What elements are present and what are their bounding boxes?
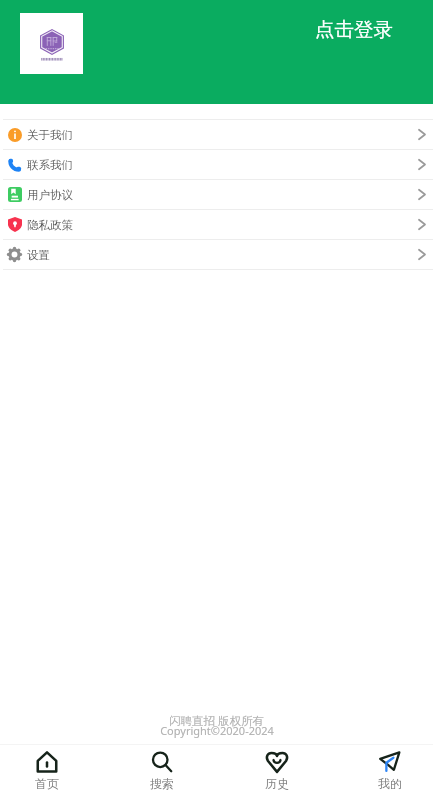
button[interactable]: 首页 xyxy=(0,745,101,794)
button[interactable]: 设置 xyxy=(0,240,433,269)
button[interactable]: Logo xyxy=(20,13,83,74)
staticText: 联系我们 xyxy=(27,158,73,172)
button[interactable]: 搜索 xyxy=(108,745,216,794)
button[interactable]: 我的 xyxy=(336,745,433,794)
button[interactable]: 用户协议 xyxy=(0,180,433,209)
staticText: 隐私政策 xyxy=(27,218,73,232)
button[interactable]: 关于我们 xyxy=(0,120,433,149)
staticText: 历史 xyxy=(265,776,289,791)
button[interactable]: 历史 xyxy=(223,745,331,794)
staticText: 关于我们 xyxy=(27,128,73,142)
staticText: 搜索 xyxy=(150,776,174,791)
button[interactable]: 联系我们 xyxy=(0,150,433,179)
button[interactable]: 点击登录 xyxy=(315,17,393,42)
staticText: 设置 xyxy=(27,248,50,262)
staticText: 用户协议 xyxy=(27,188,73,202)
staticText: 首页 xyxy=(35,776,59,791)
staticText: 闪聘直招 版权所有 xyxy=(169,713,264,729)
button[interactable]: 隐私政策 xyxy=(0,210,433,239)
staticText: Copyright©2020-2024 xyxy=(160,723,274,738)
staticText: 我的 xyxy=(378,776,402,791)
